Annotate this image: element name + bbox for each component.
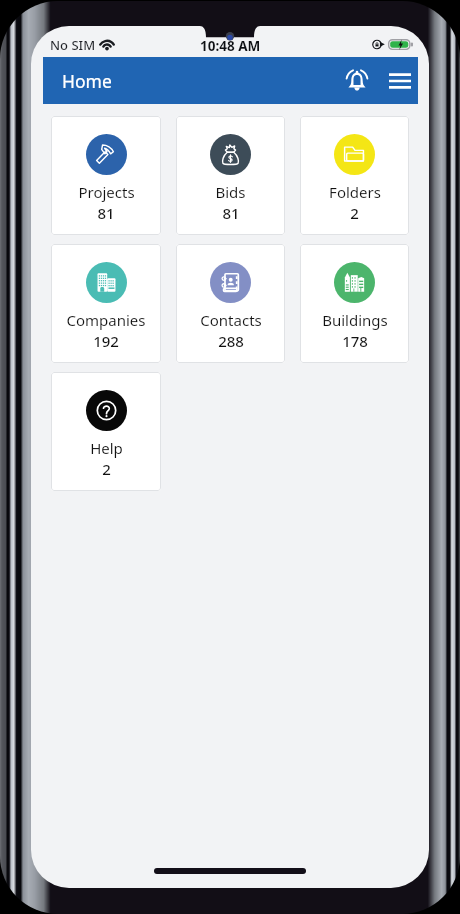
staticText: 10:48 AM: [200, 37, 261, 55]
staticText: 2: [350, 203, 359, 223]
button[interactable]: Help: [51, 372, 161, 491]
button[interactable]: Buildings: [300, 244, 409, 363]
button[interactable]: Bids: [176, 116, 285, 235]
staticText: 81: [97, 203, 115, 223]
button[interactable]: Notifications: [333, 57, 381, 104]
button[interactable]: Folders: [300, 116, 409, 235]
staticText: No SIM: [50, 36, 96, 54]
staticText: Bids: [215, 182, 246, 202]
staticText: Folders: [329, 182, 381, 202]
staticText: 81: [222, 203, 240, 223]
staticText: 2: [102, 459, 111, 479]
button[interactable]: Companies: [51, 244, 161, 363]
staticText: Projects: [78, 182, 135, 202]
staticText: Companies: [66, 310, 146, 330]
staticText: 178: [342, 331, 368, 351]
staticText: Home: [62, 69, 112, 93]
button[interactable]: Menu: [381, 57, 418, 104]
staticText: 192: [93, 331, 119, 351]
staticText: 288: [218, 331, 244, 351]
staticText: Buildings: [322, 310, 388, 330]
button[interactable]: Contacts: [176, 244, 285, 363]
staticText: Contacts: [200, 310, 262, 330]
button[interactable]: Projects: [51, 116, 161, 235]
staticText: Help: [90, 438, 123, 458]
